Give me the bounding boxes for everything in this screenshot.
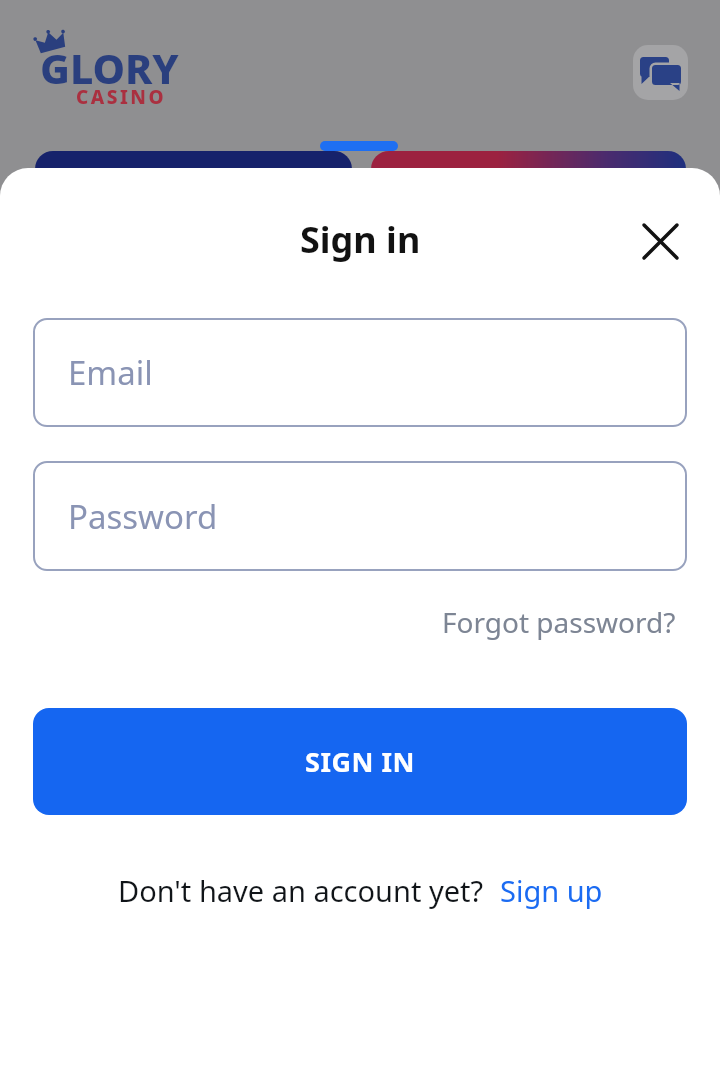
- staticText: Sign in: [300, 215, 421, 263]
- button[interactable]: SIGN IN: [33, 708, 687, 815]
- staticText: Email: [68, 350, 153, 395]
- staticText: SIGN IN: [305, 743, 415, 780]
- staticText: Password: [68, 494, 218, 539]
- button[interactable]: Password: [33, 461, 687, 571]
- staticText: Don't have an account yet?: [118, 871, 484, 910]
- button[interactable]: Forgot password?: [442, 603, 676, 641]
- staticText: GLORY: [40, 40, 179, 96]
- button[interactable]: Email: [33, 318, 687, 427]
- button[interactable]: [633, 45, 688, 100]
- staticText: CASINO: [76, 84, 166, 110]
- button[interactable]: Sign up: [500, 871, 603, 910]
- button[interactable]: [630, 211, 690, 271]
